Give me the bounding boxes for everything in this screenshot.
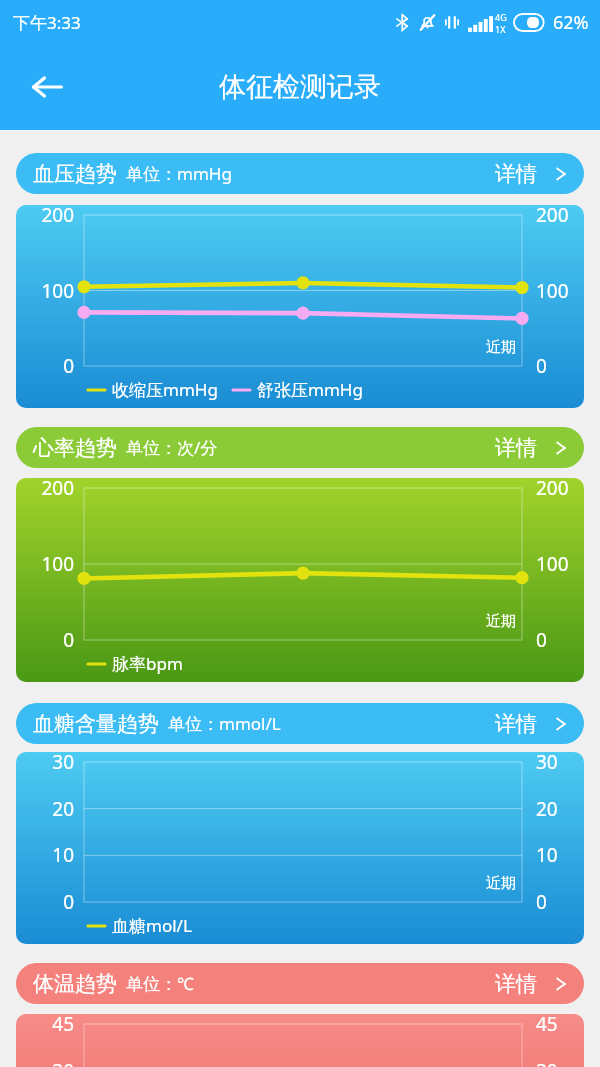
staticText: 体征检测记录 <box>219 70 381 104</box>
staticText: 200 <box>536 478 584 501</box>
staticText: 100 <box>536 278 584 304</box>
staticText: 脉率bpm <box>112 652 183 675</box>
staticText: 30 <box>16 1058 74 1067</box>
staticText: 100 <box>16 278 74 304</box>
staticText: 详情 <box>495 161 537 187</box>
staticText: 10 <box>536 842 584 868</box>
button[interactable]: 血压趋势 <box>16 153 584 194</box>
staticText: 单位：次/分 <box>126 436 218 459</box>
staticText: 详情 <box>495 711 537 737</box>
staticText: 心率趋势 <box>33 435 117 461</box>
staticText: 200 <box>536 205 584 228</box>
staticText: 30 <box>536 1058 584 1067</box>
staticText: 0 <box>16 889 74 915</box>
staticText: 0 <box>536 889 584 915</box>
staticText: 体温趋势 <box>33 971 117 997</box>
staticText: 62% <box>553 10 589 35</box>
button[interactable]: Back <box>18 58 76 116</box>
staticText: 0 <box>16 627 74 653</box>
staticText: 10 <box>16 842 74 868</box>
staticText: 30 <box>536 752 584 775</box>
button[interactable]: 200 <box>16 205 584 408</box>
button[interactable]: 血糖含量趋势 <box>16 703 584 744</box>
staticText: 详情 <box>495 435 537 461</box>
staticText: 0 <box>536 353 584 379</box>
staticText: 200 <box>16 478 74 501</box>
staticText: 单位：mmHg <box>126 162 232 185</box>
staticText: 血糖含量趋势 <box>33 711 159 737</box>
staticText: 20 <box>536 796 584 822</box>
staticText: 近期 <box>486 338 516 357</box>
staticText: 血压趋势 <box>33 161 117 187</box>
staticText: 100 <box>536 551 584 577</box>
staticText: 0 <box>16 353 74 379</box>
button[interactable]: 200 <box>16 478 584 682</box>
staticText: 1X <box>495 23 506 35</box>
staticText: 45 <box>16 1014 74 1037</box>
button[interactable]: 45 <box>16 1014 584 1067</box>
staticText: 30 <box>16 752 74 775</box>
staticText: 单位：℃ <box>126 972 194 995</box>
staticText: 下午3:33 <box>13 11 81 34</box>
staticText: 0 <box>536 627 584 653</box>
staticText: 45 <box>536 1014 584 1037</box>
staticText: 血糖mol/L <box>112 914 192 937</box>
button[interactable]: 体温趋势 <box>16 963 584 1004</box>
staticText: 舒张压mmHg <box>257 378 363 401</box>
staticText: 详情 <box>495 971 537 997</box>
staticText: 200 <box>16 205 74 228</box>
staticText: 单位：mmol/L <box>168 712 281 735</box>
staticText: 近期 <box>486 874 516 893</box>
staticText: 20 <box>16 796 74 822</box>
button[interactable]: 30 <box>16 752 584 944</box>
staticText: 收缩压mmHg <box>112 378 218 401</box>
staticText: 100 <box>16 551 74 577</box>
button[interactable]: 心率趋势 <box>16 427 584 468</box>
staticText: 近期 <box>486 612 516 631</box>
staticText: 4G <box>495 11 507 23</box>
